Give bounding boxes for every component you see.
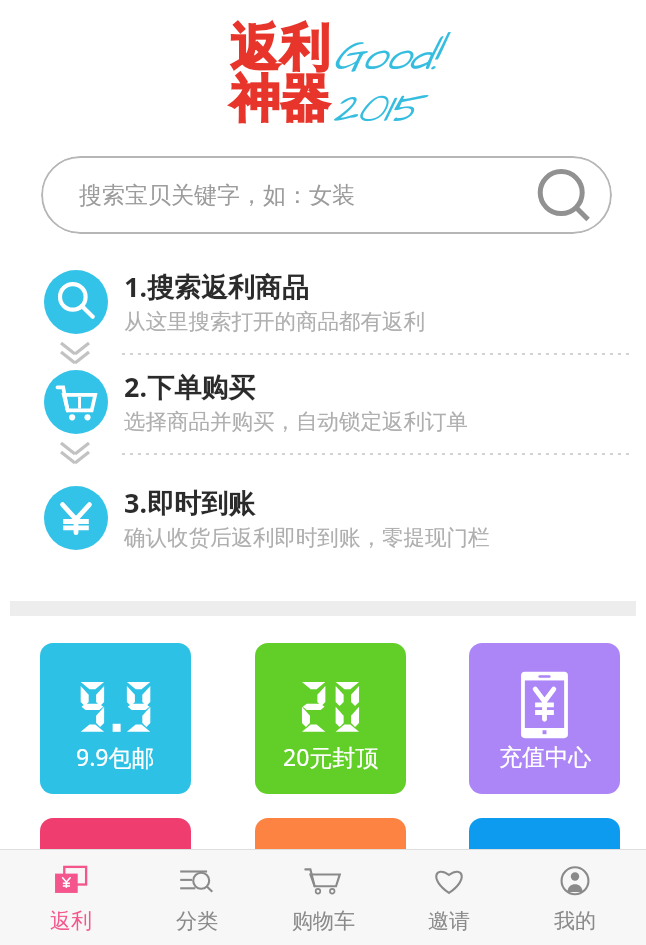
staticText: 分类 (176, 908, 218, 934)
button[interactable]: 搜索宝贝关键字，如：女装 (41, 156, 612, 234)
button[interactable]: 我的 (520, 861, 630, 934)
staticText: 神器 (230, 68, 330, 131)
button[interactable]: 邀请 (394, 861, 504, 934)
button[interactable]: 充值中心 (469, 643, 620, 794)
button[interactable]: 2.下单购买 (0, 368, 646, 452)
staticText: 2015 (332, 80, 418, 138)
other: 分类 (176, 861, 218, 903)
staticText: 从这里搜索打开的商品都有返利 (124, 308, 425, 335)
staticText: 选择商品并购买，自动锁定返利订单 (124, 408, 468, 435)
staticText: 20元封顶 (283, 741, 379, 772)
button[interactable]: 1.搜索返利商品 (0, 268, 646, 352)
staticText: 返利 (50, 908, 92, 934)
staticText: 充值中心 (499, 743, 591, 772)
staticText: 3.即时到账 (124, 484, 256, 521)
staticText: 购物车 (292, 908, 355, 934)
button[interactable] (469, 818, 620, 945)
staticText: 搜索宝贝关键字，如：女装 (79, 181, 355, 210)
other: 邀请 (428, 861, 470, 903)
button[interactable]: 分类 (142, 861, 252, 934)
other: Search (533, 165, 593, 225)
staticText: 返利 (230, 17, 330, 80)
other: 返利 (50, 861, 92, 903)
staticText: 2.下单购买 (124, 368, 256, 405)
staticText: 1.搜索返利商品 (124, 268, 310, 305)
other: 我的 (554, 861, 596, 903)
button[interactable]: 20元封顶 (255, 643, 406, 794)
button[interactable] (40, 818, 191, 945)
staticText: Good! (332, 28, 436, 86)
button[interactable]: 3.即时到账 (0, 484, 646, 568)
other: 购物车 (302, 861, 344, 903)
button[interactable]: 9.9包邮 (40, 643, 191, 794)
staticText: 确认收货后返利即时到账，零提现门栏 (124, 524, 490, 551)
staticText: 邀请 (428, 908, 470, 934)
staticText: 9.9包邮 (76, 741, 155, 772)
button[interactable]: 购物车 (268, 861, 378, 934)
button[interactable] (255, 818, 406, 945)
staticText: 我的 (554, 908, 596, 934)
button[interactable]: 返利 (16, 861, 126, 934)
